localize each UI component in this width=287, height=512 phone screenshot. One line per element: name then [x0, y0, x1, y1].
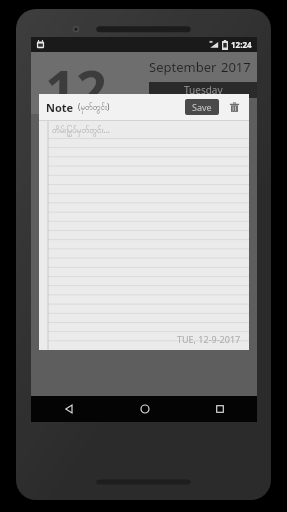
staticText: 12	[45, 52, 107, 114]
button[interactable]: တိမ်းမြှပ်မှတ်တွင်း...	[39, 121, 249, 350]
staticText: September	[149, 58, 217, 76]
button[interactable]: Delete note	[226, 99, 242, 115]
button[interactable]: Save	[192, 101, 212, 113]
staticText: Save	[192, 101, 212, 113]
staticText: 12:24	[231, 39, 252, 50]
staticText: Tuesday	[184, 83, 223, 97]
staticText: တိမ်းမြှပ်မှတ်တွင်း...	[52, 124, 110, 136]
staticText: 2017	[221, 58, 251, 76]
button[interactable]: Back	[31, 396, 107, 422]
button[interactable]: Recent apps	[182, 396, 257, 422]
staticText: (မှတ်တွင်း)	[78, 101, 110, 113]
staticText: Note	[46, 100, 74, 115]
staticText: TUE, 12-9-2017	[177, 333, 241, 345]
button[interactable]: Home	[107, 396, 182, 422]
